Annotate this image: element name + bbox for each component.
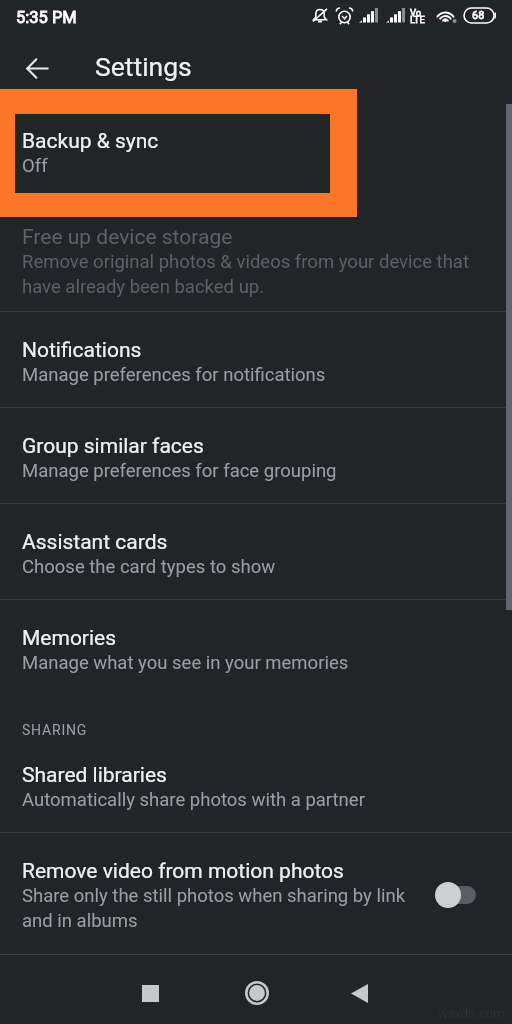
button[interactable]: Remove video from motion photos toggle	[436, 875, 492, 915]
staticText: Manage what you see in your memories	[22, 652, 349, 674]
staticText: Remove original photos & videos from you…	[22, 251, 469, 297]
staticText: Free up device storage	[22, 225, 233, 250]
staticText: SHARING	[22, 722, 88, 738]
staticText: Manage preferences for face grouping	[22, 460, 337, 482]
staticText: wsxdn.com	[438, 1006, 505, 1021]
staticText: Backup & sync	[22, 129, 159, 154]
staticText: 5:35 PM	[16, 8, 77, 27]
staticText: Assistant cards	[22, 530, 168, 555]
button[interactable]: Recents	[129, 972, 171, 1014]
button[interactable]: Back	[19, 50, 55, 86]
button[interactable]: Backup & sync	[15, 114, 330, 193]
staticText: Choose the card types to show	[22, 556, 276, 578]
button[interactable]: Home	[236, 972, 278, 1014]
button[interactable]: Assistant cards	[0, 504, 512, 599]
staticText: Vo LTE	[410, 7, 425, 26]
staticText: Automatically share photos with a partne…	[22, 789, 365, 811]
button[interactable]: Free up device storage	[0, 217, 512, 311]
staticText: Shared libraries	[22, 763, 167, 788]
button[interactable]: Shared libraries	[0, 763, 512, 832]
staticText: Group similar faces	[22, 434, 204, 459]
staticText: Manage preferences for notifications	[22, 364, 326, 386]
button[interactable]: Back	[338, 972, 380, 1014]
staticText: Share only the still photos when sharing…	[22, 885, 406, 931]
staticText: 68	[472, 9, 485, 22]
button[interactable]: Remove video from motion photos	[0, 833, 512, 951]
staticText: Off	[22, 155, 48, 177]
button[interactable]: Notifications	[0, 312, 512, 407]
staticText: Remove video from motion photos	[22, 859, 344, 884]
button[interactable]: Memories	[0, 600, 512, 695]
staticText: Settings	[95, 51, 192, 82]
staticText: Notifications	[22, 338, 142, 363]
button[interactable]: Group similar faces	[0, 408, 512, 503]
staticText: Memories	[22, 626, 117, 651]
